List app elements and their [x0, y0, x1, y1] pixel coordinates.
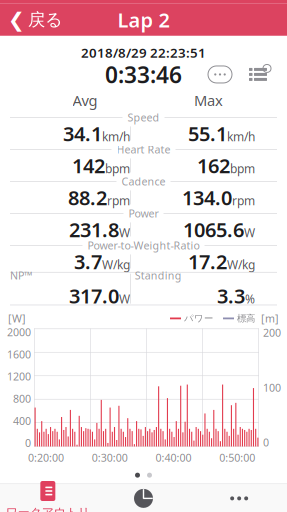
staticText: Heart Rate: [116, 142, 170, 156]
staticText: NP™: [10, 268, 32, 282]
staticText: km/h: [102, 129, 130, 144]
staticText: Lap 2: [117, 6, 169, 33]
staticText: 400: [13, 414, 31, 428]
staticText: Standing: [135, 268, 182, 282]
staticText: rpm: [232, 193, 255, 208]
staticText: 1200: [7, 369, 31, 383]
staticText: パワー: [184, 313, 213, 324]
staticText: 0: [263, 435, 269, 449]
button[interactable]: Add to list: [247, 66, 269, 83]
staticText: Cadence: [121, 174, 165, 188]
staticText: 0:20:00: [28, 450, 64, 465]
button[interactable]: セグメント: [96, 481, 191, 512]
staticText: [W]: [8, 311, 26, 325]
staticText: [m]: [261, 311, 279, 325]
button[interactable]: ❮: [0, 4, 71, 36]
staticText: 200: [263, 325, 281, 340]
staticText: Avg: [72, 90, 97, 110]
staticText: 2018/8/29 22:23:51: [81, 44, 206, 61]
staticText: W: [244, 225, 255, 240]
staticText: 100: [263, 380, 281, 395]
staticText: 0:50:00: [219, 450, 255, 465]
staticText: bpm: [230, 161, 255, 176]
staticText: 55.1: [188, 120, 227, 147]
staticText: W: [119, 225, 130, 240]
staticText: 戻る: [28, 9, 63, 30]
button[interactable]: ワークアウトリスト: [0, 474, 96, 512]
staticText: W/kg: [102, 257, 130, 272]
button[interactable]: Comments: [207, 64, 233, 84]
staticText: 88.2: [68, 184, 107, 211]
staticText: 142: [72, 152, 105, 179]
staticText: 2000: [7, 325, 31, 339]
staticText: 1600: [7, 347, 31, 361]
staticText: 800: [13, 391, 31, 406]
staticText: km/h: [227, 129, 255, 144]
staticText: 317.0: [69, 282, 119, 309]
staticText: 0:30:00: [92, 450, 128, 465]
staticText: 1065.6: [183, 216, 244, 243]
staticText: %: [245, 291, 255, 307]
staticText: 0:33:46: [105, 59, 182, 89]
staticText: ❮: [8, 8, 25, 31]
staticText: 134.0: [182, 184, 232, 211]
staticText: 162: [197, 152, 230, 179]
staticText: 17.2: [188, 248, 227, 275]
staticText: bpm: [105, 161, 130, 176]
staticText: 34.1: [63, 120, 102, 147]
button[interactable]: もっと: [191, 481, 287, 512]
staticText: Power: [128, 206, 158, 220]
staticText: 0:40:00: [155, 450, 191, 465]
staticText: 3.7: [74, 248, 102, 275]
staticText: Power-to-Weight-Ratio: [87, 238, 199, 252]
staticText: W/kg: [227, 257, 255, 272]
staticText: 231.8: [69, 216, 119, 243]
staticText: 標高: [237, 313, 255, 324]
staticText: Max: [194, 90, 223, 110]
staticText: rpm: [107, 193, 130, 208]
staticText: W: [119, 291, 130, 307]
staticText: Speed: [127, 110, 159, 124]
staticText: ワークアウトリスト: [6, 505, 90, 512]
staticText: 3.3: [217, 282, 245, 309]
staticText: 0: [25, 436, 31, 450]
